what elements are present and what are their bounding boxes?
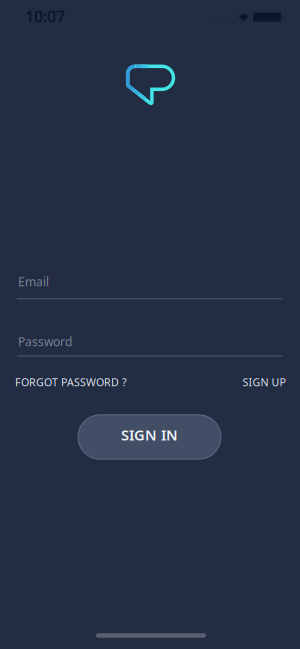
button[interactable]: FORGOT PASSWORD ? [15, 375, 155, 389]
staticText: SIGN IN [121, 425, 178, 444]
button[interactable]: Email [17, 274, 283, 302]
button[interactable]: SIGN IN [78, 415, 221, 459]
button[interactable]: Password [17, 334, 283, 362]
staticText: SIGN UP [242, 375, 285, 389]
button[interactable]: SIGN UP [185, 375, 285, 389]
staticText: Email [18, 273, 49, 289]
staticText: Password [18, 333, 72, 349]
staticText: 10:07 [25, 6, 65, 27]
staticText: FORGOT PASSWORD ? [15, 375, 127, 389]
